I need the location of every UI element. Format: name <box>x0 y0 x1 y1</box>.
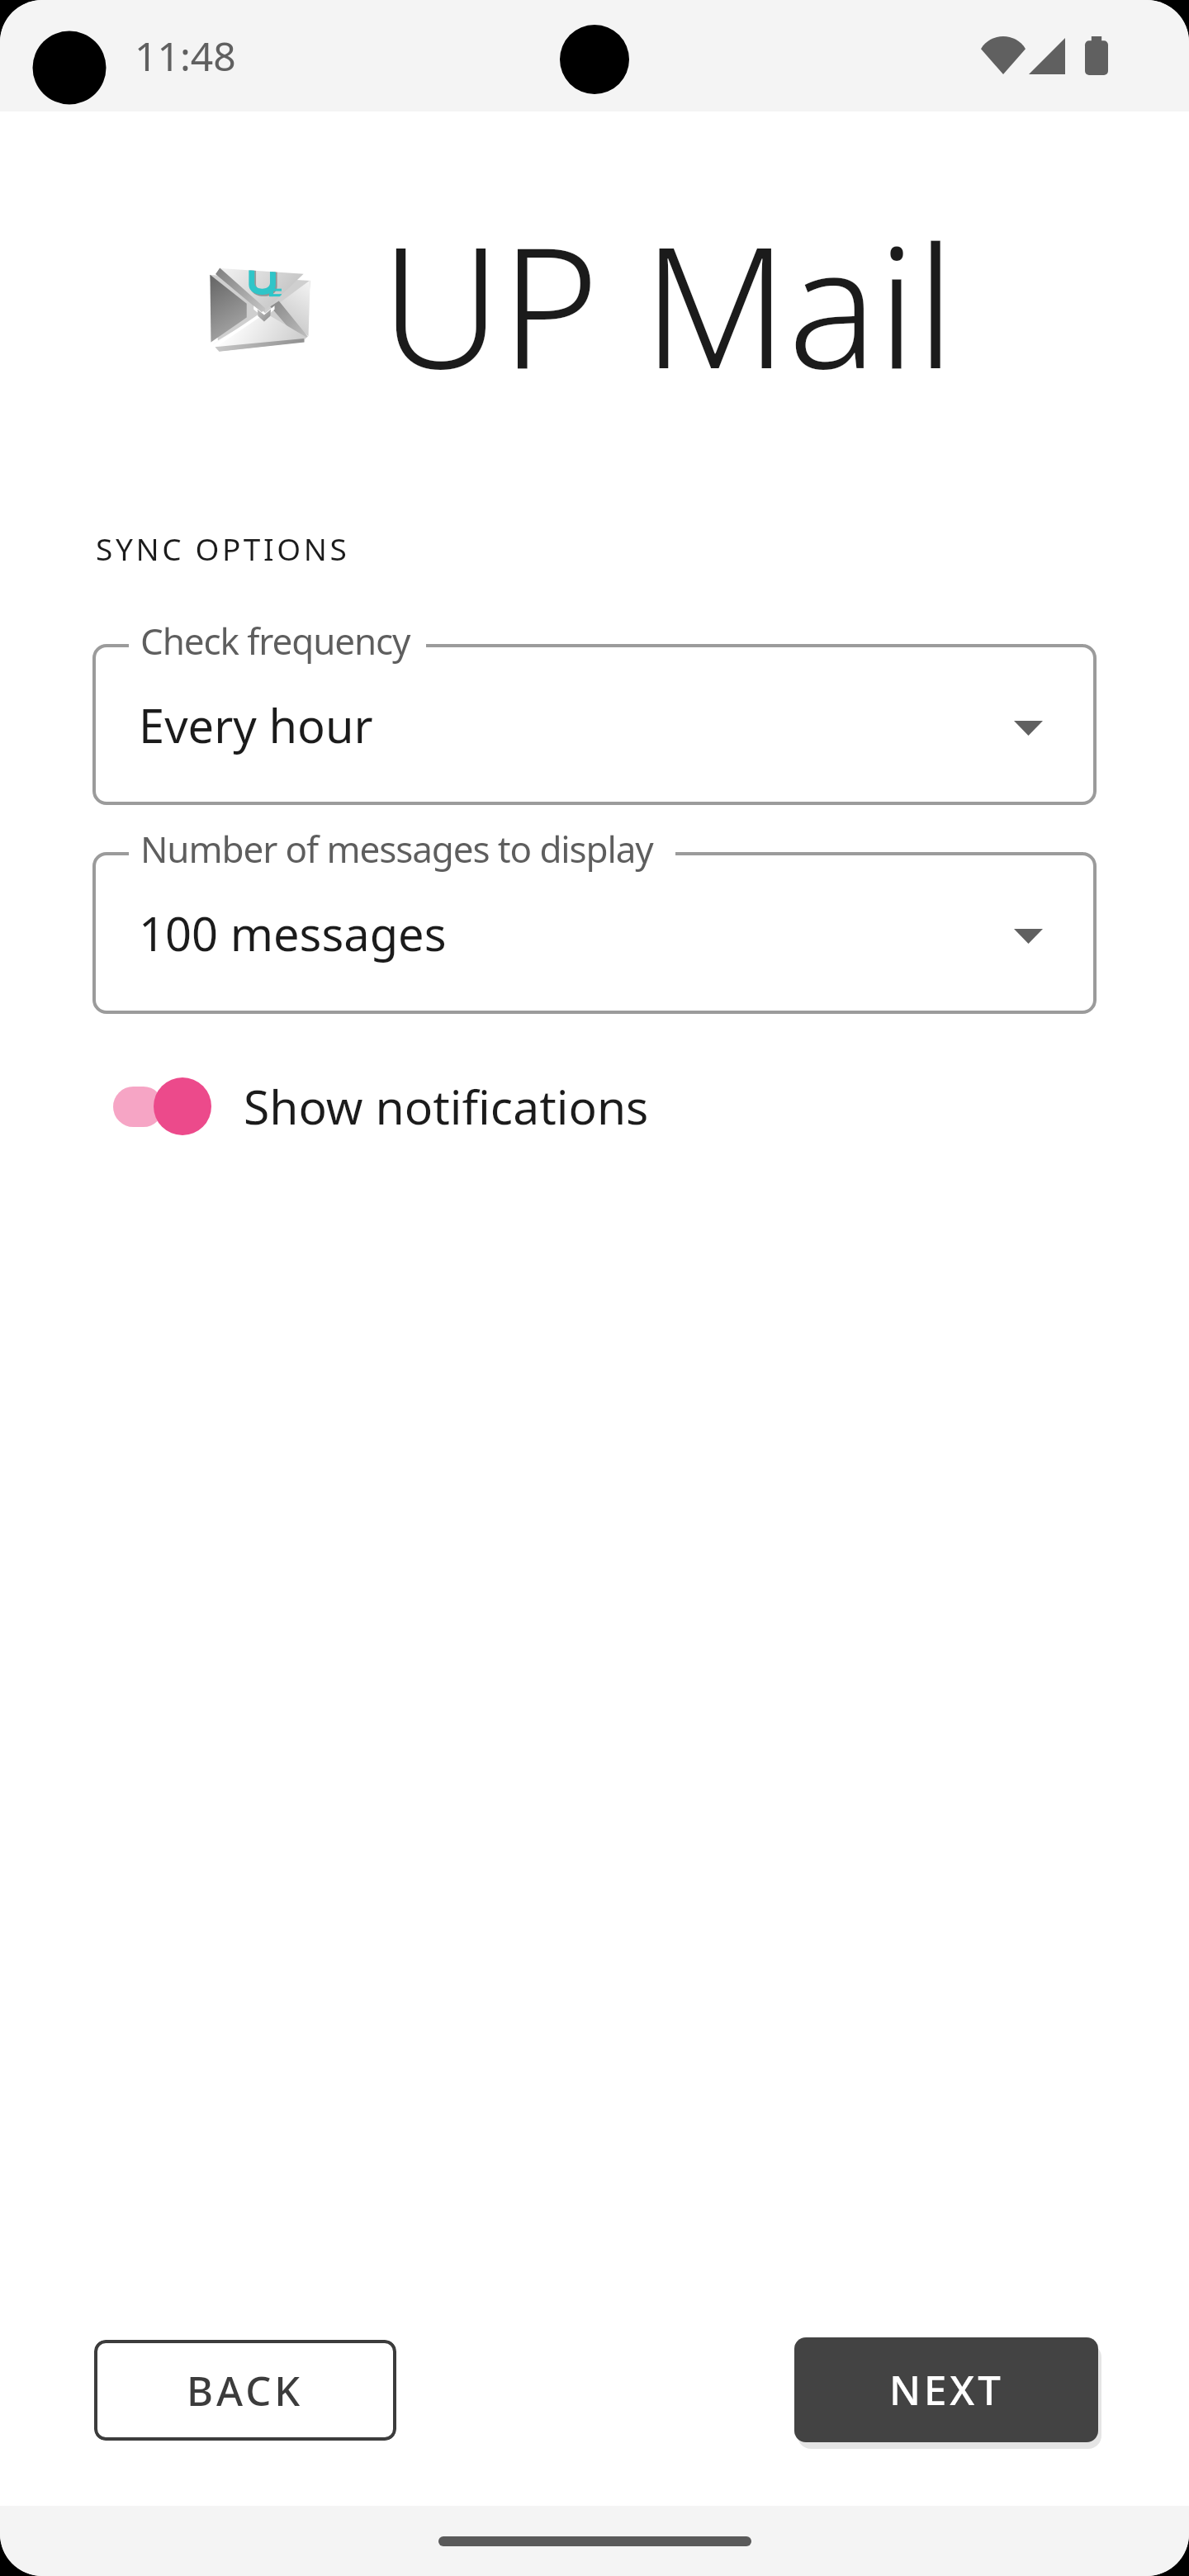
button[interactable]: BACK <box>94 2340 396 2441</box>
button[interactable]: Show notifications toggle, on <box>92 1058 918 1154</box>
other: Show notifications toggle, on <box>92 1073 216 1139</box>
staticText: UP Mail <box>381 190 955 417</box>
button[interactable]: NEXT <box>794 2337 1098 2442</box>
staticText: Check frequency <box>140 616 410 665</box>
staticText: Number of messages to display <box>140 824 653 874</box>
staticText: 100 messages <box>139 902 447 964</box>
staticText: Show notifications <box>244 1074 649 1139</box>
button[interactable]: Check frequency <box>92 644 1097 805</box>
button[interactable]: Number of messages to display <box>92 852 1097 1014</box>
staticText: BACK <box>187 2363 304 2418</box>
staticText: 11:48 <box>135 29 236 83</box>
staticText: NEXT <box>889 2362 1004 2417</box>
staticText: SYNC OPTIONS <box>96 528 350 569</box>
staticText: Every hour <box>139 694 373 756</box>
